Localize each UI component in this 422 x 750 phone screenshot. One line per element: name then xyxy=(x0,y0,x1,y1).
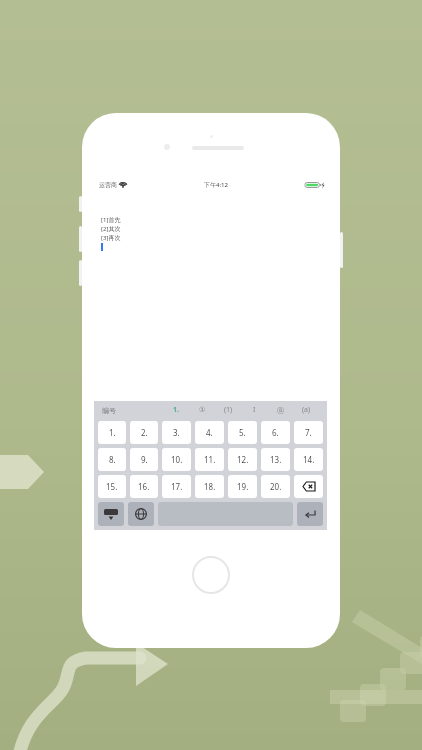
staticText: 9. xyxy=(141,454,148,465)
staticText: 下午4:12 xyxy=(204,181,228,189)
button[interactable]: 3. xyxy=(162,421,191,444)
button[interactable]: Home xyxy=(192,556,230,594)
button[interactable]: 6. xyxy=(261,421,290,444)
button[interactable]: 15. xyxy=(98,475,126,498)
button[interactable]: 19. xyxy=(228,475,257,498)
button[interactable]: Return xyxy=(297,502,323,526)
staticText: 5. xyxy=(239,427,246,438)
staticText: 6. xyxy=(272,427,279,438)
button[interactable]: 13. xyxy=(261,448,290,471)
staticText: 13. xyxy=(270,454,282,465)
staticText: 1. xyxy=(109,427,116,438)
staticText: [2]其次 xyxy=(101,225,121,233)
button[interactable]: 20. xyxy=(261,475,290,498)
button[interactable]: 1. xyxy=(98,421,126,444)
button[interactable]: 12. xyxy=(228,448,257,471)
button[interactable]: 9. xyxy=(130,448,158,471)
button[interactable]: 5. xyxy=(228,421,257,444)
button[interactable]: (1) xyxy=(215,401,241,419)
button[interactable]: 16. xyxy=(130,475,158,498)
button[interactable]: 2. xyxy=(130,421,158,444)
staticText: [3]再次 xyxy=(101,234,121,242)
staticText: 10. xyxy=(171,454,183,465)
staticText: 1. xyxy=(173,405,179,415)
button[interactable]: 11. xyxy=(195,448,224,471)
staticText: 20. xyxy=(270,481,282,492)
button[interactable]: Hide keyboard xyxy=(98,502,124,526)
staticText: 2. xyxy=(141,427,148,438)
button[interactable]: 1. xyxy=(163,401,189,419)
staticText: 编号 xyxy=(102,406,116,415)
button[interactable]: Delete xyxy=(294,475,323,498)
staticText: 19. xyxy=(237,481,249,492)
button[interactable]: 17. xyxy=(162,475,191,498)
staticText: ⓐ xyxy=(277,406,284,415)
staticText: 15. xyxy=(106,481,118,492)
staticText: 4. xyxy=(206,427,213,438)
button[interactable]: (a) xyxy=(293,401,319,419)
staticText: (1) xyxy=(224,405,233,415)
staticText: 运营商 xyxy=(99,181,117,189)
button[interactable]: I xyxy=(241,401,267,419)
staticText: I xyxy=(253,405,256,415)
button[interactable]: 4. xyxy=(195,421,224,444)
button[interactable]: 18. xyxy=(195,475,224,498)
button[interactable]: 14. xyxy=(294,448,323,471)
button[interactable]: 10. xyxy=(162,448,191,471)
staticText: 16. xyxy=(138,481,150,492)
staticText: 3. xyxy=(173,427,180,438)
button[interactable]: 8. xyxy=(98,448,126,471)
staticText: 8. xyxy=(109,454,116,465)
staticText: 7. xyxy=(305,427,312,438)
button[interactable]: 7. xyxy=(294,421,323,444)
staticText: 18. xyxy=(204,481,216,492)
button[interactable]: ① xyxy=(189,401,215,419)
staticText: ① xyxy=(199,406,206,414)
staticText: 12. xyxy=(237,454,249,465)
staticText: 17. xyxy=(171,481,183,492)
staticText: [1]首先 xyxy=(101,216,121,224)
staticText: 14. xyxy=(303,454,315,465)
button[interactable]: Change language xyxy=(128,502,154,526)
staticText: 11. xyxy=(204,454,216,465)
staticText: (a) xyxy=(302,405,311,415)
button[interactable]: ⓐ xyxy=(267,401,293,419)
